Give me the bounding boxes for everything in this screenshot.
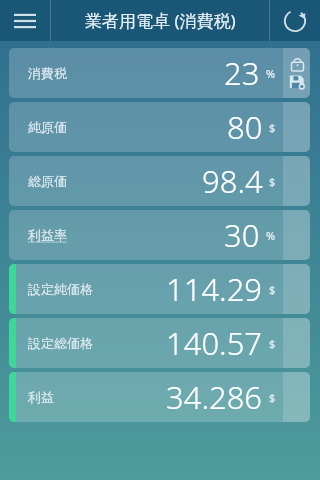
staticText: 114.29 <box>166 268 263 310</box>
staticText: 140.57 <box>166 322 263 364</box>
button[interactable]: Reset <box>270 0 320 41</box>
button[interactable]: 純原価 <box>9 102 310 152</box>
staticText: 利益 <box>28 389 54 405</box>
staticText: 設定純価格 <box>28 281 93 297</box>
staticText: 98.4 <box>202 160 263 202</box>
staticText: 23 <box>224 52 260 94</box>
button[interactable]: 設定純価格 <box>9 264 310 314</box>
staticText: $ <box>269 390 276 405</box>
button[interactable]: 利益 <box>9 372 310 422</box>
staticText: 30 <box>224 214 260 256</box>
staticText: % <box>266 228 276 243</box>
button[interactable]: 設定総価格 <box>9 318 310 368</box>
staticText: % <box>266 66 276 81</box>
staticText: $ <box>269 282 276 297</box>
staticText: 設定総価格 <box>28 335 93 351</box>
staticText: $ <box>269 174 276 189</box>
button[interactable]: Menu <box>0 0 50 41</box>
button[interactable]: Lock and save <box>283 48 310 98</box>
staticText: 純原価 <box>28 119 67 135</box>
button[interactable]: 利益率 <box>9 210 310 260</box>
staticText: 消費税 <box>28 65 67 81</box>
staticText: 利益率 <box>28 227 67 243</box>
button[interactable]: 総原価 <box>9 156 310 206</box>
staticText: 業者用電卓 (消費税) <box>85 9 236 32</box>
staticText: 34.286 <box>166 376 263 418</box>
staticText: 80 <box>227 106 263 148</box>
staticText: 総原価 <box>28 173 67 189</box>
staticText: $ <box>269 120 276 135</box>
button[interactable]: 消費税 <box>9 48 310 98</box>
staticText: $ <box>269 336 276 351</box>
